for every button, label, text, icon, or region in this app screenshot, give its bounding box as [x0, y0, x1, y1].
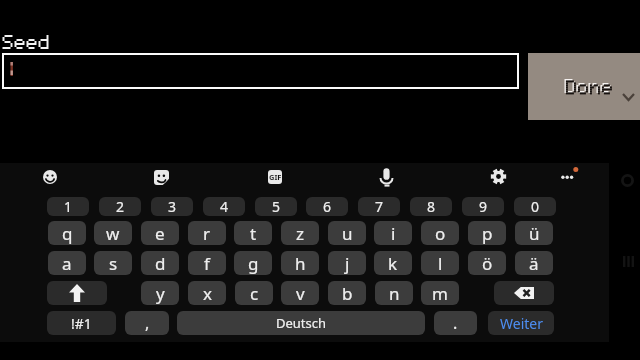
button[interactable]: ü	[515, 221, 553, 245]
staticText: x	[203, 282, 212, 305]
staticText: 0	[531, 197, 540, 216]
staticText: p	[482, 222, 493, 245]
staticText: Deutsch	[276, 314, 327, 332]
button[interactable]: 5	[255, 197, 297, 216]
staticText: Weiter	[500, 314, 543, 333]
button[interactable]: q	[48, 221, 86, 245]
button[interactable]: m	[421, 281, 459, 305]
button[interactable]: 2	[99, 197, 141, 216]
staticText: 1	[64, 197, 73, 216]
staticText: ö	[482, 252, 493, 275]
button[interactable]: Backspace	[494, 281, 554, 305]
staticText: ,	[145, 312, 150, 334]
staticText: m	[432, 282, 448, 305]
staticText: 9	[479, 197, 488, 216]
button[interactable]: b	[328, 281, 366, 305]
button[interactable]: v	[281, 281, 319, 305]
staticText: q	[62, 222, 73, 245]
staticText: .	[453, 312, 458, 334]
button[interactable]: f	[188, 251, 226, 275]
staticText: 8	[427, 197, 436, 216]
button[interactable]: ä	[515, 251, 553, 275]
button[interactable]: 1	[47, 197, 89, 216]
button[interactable]	[2, 53, 519, 89]
button[interactable]: k	[374, 251, 412, 275]
button[interactable]: Home	[621, 174, 634, 187]
button[interactable]: Weiter	[488, 311, 554, 335]
staticText: c	[250, 282, 259, 305]
button[interactable]: p	[468, 221, 506, 245]
button[interactable]: Emoji	[43, 170, 57, 184]
staticText: v	[296, 282, 305, 305]
staticText: t	[250, 222, 257, 245]
staticText: k	[388, 252, 398, 275]
button[interactable]: ,	[125, 311, 169, 335]
staticText: !#1	[71, 314, 92, 333]
button[interactable]: c	[235, 281, 273, 305]
staticText: e	[155, 222, 165, 245]
other: Backspace	[514, 287, 534, 299]
button[interactable]: o	[421, 221, 459, 245]
button[interactable]: t	[234, 221, 272, 245]
button[interactable]: x	[188, 281, 226, 305]
button[interactable]: Shift	[47, 281, 107, 305]
button[interactable]: Settings	[490, 168, 507, 185]
button[interactable]: 7	[358, 197, 400, 216]
staticText: r	[203, 222, 211, 245]
staticText: 5	[272, 197, 281, 216]
button[interactable]: n	[375, 281, 413, 305]
staticText: 7	[375, 197, 384, 216]
button[interactable]: r	[188, 221, 226, 245]
staticText: i	[391, 222, 396, 245]
button[interactable]: j	[328, 251, 366, 275]
staticText: s	[109, 252, 118, 275]
button[interactable]: Voice input	[380, 167, 394, 189]
button[interactable]: !#1	[47, 311, 116, 335]
button[interactable]: d	[141, 251, 179, 275]
button[interactable]: 6	[306, 197, 348, 216]
button[interactable]: h	[281, 251, 319, 275]
button[interactable]: 8	[410, 197, 452, 216]
staticText: j	[345, 252, 350, 275]
staticText: y	[156, 282, 165, 305]
button[interactable]: u	[328, 221, 366, 245]
staticText: l	[438, 252, 443, 275]
staticText: w	[106, 222, 120, 245]
staticText: n	[389, 282, 400, 305]
staticText: d	[155, 252, 166, 275]
staticText: z	[296, 222, 304, 245]
button[interactable]: y	[141, 281, 179, 305]
button[interactable]: Stickers	[154, 170, 169, 185]
button[interactable]: w	[94, 221, 132, 245]
button[interactable]: 3	[151, 197, 193, 216]
staticText: 3	[168, 197, 177, 216]
button[interactable]: a	[48, 251, 86, 275]
button[interactable]: 4	[203, 197, 245, 216]
staticText: g	[248, 252, 259, 275]
button[interactable]: .	[434, 311, 477, 335]
button[interactable]: Deutsch	[177, 311, 425, 335]
staticText: o	[435, 222, 446, 245]
other: Shift	[69, 284, 85, 302]
button[interactable]: g	[234, 251, 272, 275]
button[interactable]: Recents	[623, 256, 634, 267]
staticText: h	[295, 252, 306, 275]
button[interactable]: z	[281, 221, 319, 245]
staticText: f	[204, 252, 210, 275]
button[interactable]: e	[141, 221, 179, 245]
button[interactable]: ö	[468, 251, 506, 275]
staticText: ä	[529, 252, 539, 275]
staticText: b	[342, 282, 353, 305]
staticText: 6	[323, 197, 332, 216]
button[interactable]: s	[94, 251, 132, 275]
button[interactable]: i	[374, 221, 412, 245]
button[interactable]: 9	[462, 197, 504, 216]
staticText: 2	[116, 197, 125, 216]
button[interactable]: l	[421, 251, 459, 275]
button[interactable]: GIF	[268, 170, 282, 184]
staticText: GIF	[269, 172, 282, 182]
button[interactable]: 0	[514, 197, 556, 216]
staticText: u	[342, 222, 353, 245]
button[interactable]	[528, 53, 640, 120]
button[interactable]: More options	[558, 167, 580, 185]
